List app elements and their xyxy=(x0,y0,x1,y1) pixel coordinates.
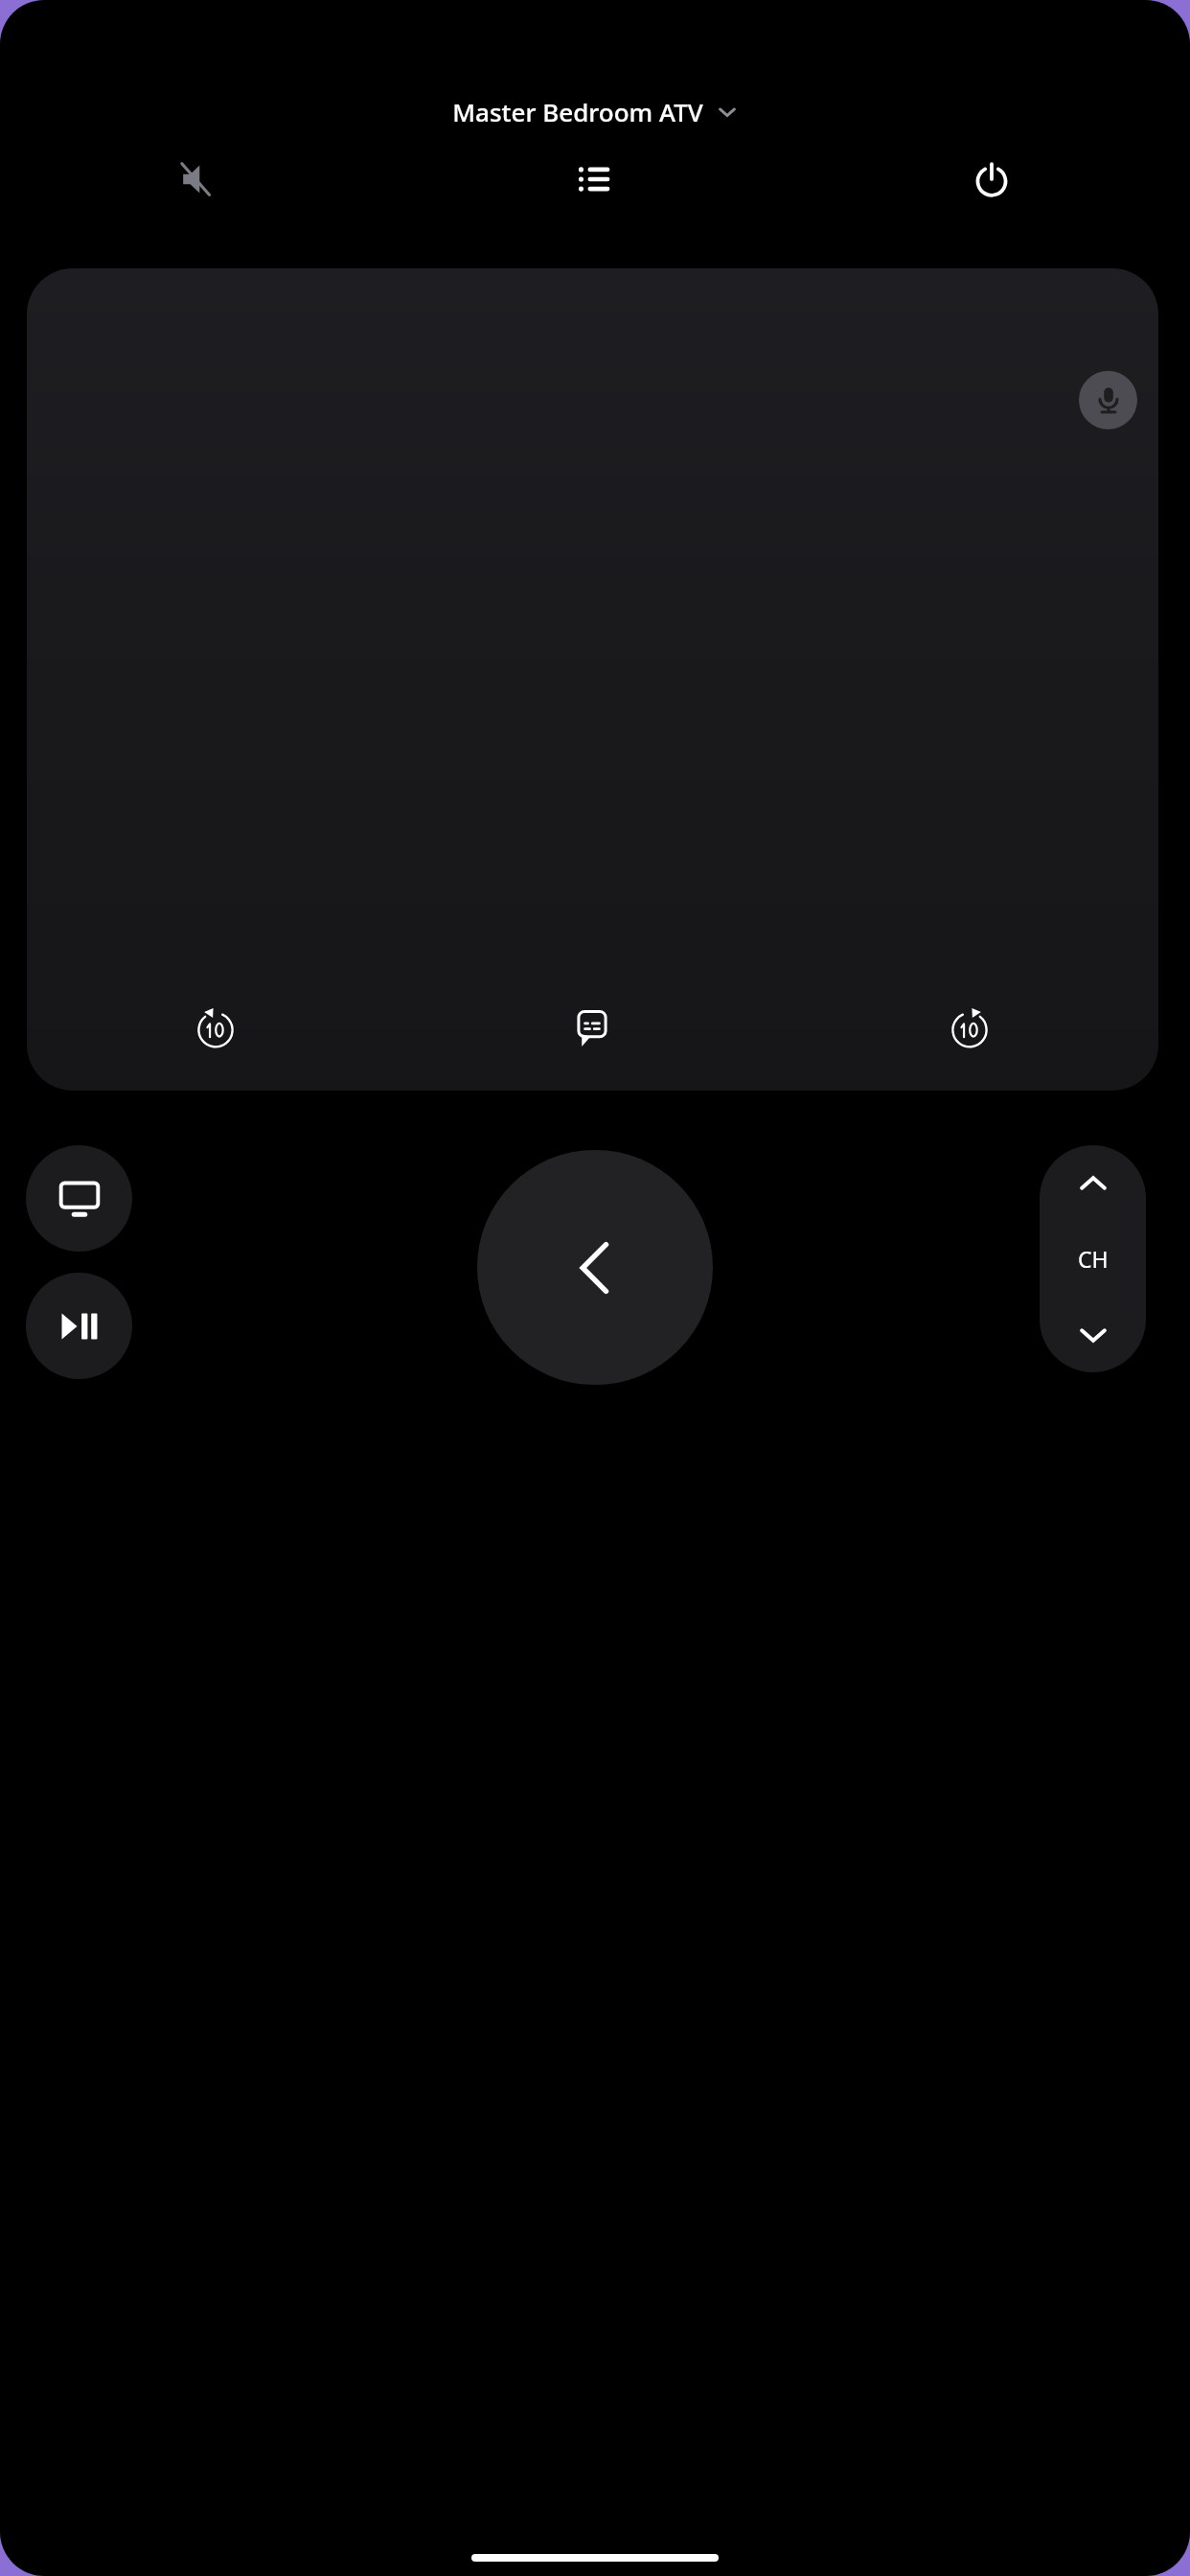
button[interactable]: Channel up xyxy=(1040,1145,1146,1221)
button[interactable]: Voice search xyxy=(1079,371,1137,429)
button[interactable]: Channel list xyxy=(397,146,793,213)
button[interactable]: TV input xyxy=(26,1145,132,1252)
button[interactable]: Power xyxy=(793,146,1190,213)
button[interactable]: Rewind 10 seconds xyxy=(27,966,403,1091)
button[interactable]: Back xyxy=(477,1150,713,1385)
button[interactable]: Master Bedroom ATV xyxy=(445,91,745,132)
staticText: Master Bedroom ATV xyxy=(452,95,703,128)
button[interactable]: Play or pause xyxy=(26,1273,132,1379)
button[interactable]: Closed captions xyxy=(403,966,781,1091)
button[interactable]: Forward 10 seconds xyxy=(781,966,1158,1091)
button[interactable]: Channel down xyxy=(1040,1297,1146,1372)
button[interactable]: Mute xyxy=(0,146,397,213)
button[interactable]: CH xyxy=(1040,1221,1146,1297)
staticText: CH xyxy=(1078,1244,1109,1274)
button[interactable]: Voice search xyxy=(27,268,1158,1091)
